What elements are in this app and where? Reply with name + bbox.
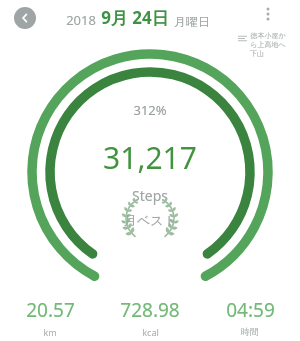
button[interactable]: More options <box>256 2 280 26</box>
staticText: 2018 <box>66 11 96 29</box>
staticText: 下山 <box>250 49 264 58</box>
staticText: 312% <box>133 101 167 119</box>
staticText: 20.57 <box>26 297 75 323</box>
staticText: Steps <box>132 186 168 205</box>
staticText: 04:59 <box>226 297 275 323</box>
staticText: 月ベスト <box>124 212 177 228</box>
staticText: 728.98 <box>120 297 180 323</box>
button[interactable]: Back <box>14 7 36 29</box>
staticText: ら上高地へ <box>250 40 286 49</box>
button[interactable]: 徳本小屋か <box>238 31 286 58</box>
staticText: km <box>43 326 57 338</box>
button[interactable]: 2018 <box>66 6 210 29</box>
button[interactable]: 04:59 <box>200 296 300 338</box>
button[interactable]: 728.98 <box>100 296 200 339</box>
staticText: kcal <box>142 326 159 338</box>
button[interactable]: 20.57 <box>0 296 100 339</box>
staticText: 31,217 <box>103 137 197 178</box>
staticText: 徳本小屋か <box>250 31 286 40</box>
staticText: 月曜日 <box>174 14 210 29</box>
staticText: 時間 <box>241 326 259 337</box>
staticText: 9月 24日 <box>101 6 169 29</box>
